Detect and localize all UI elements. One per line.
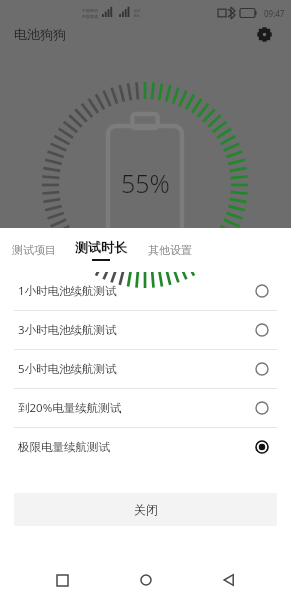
staticText: 601 — [134, 8, 141, 13]
staticText: 极限电量续航测试 — [18, 440, 110, 454]
button[interactable]: Recents — [40, 560, 84, 600]
button[interactable]: 到20%电量续航测试 — [0, 389, 291, 427]
staticText: 中国联通 — [82, 14, 98, 19]
button[interactable]: Back — [207, 560, 251, 600]
staticText: 09:47 — [264, 8, 285, 19]
staticText: 5小时电池续航测试 — [18, 361, 117, 377]
staticText: 关闭 — [134, 502, 158, 517]
staticText: 3小时电池续航测试 — [18, 322, 117, 338]
button[interactable]: 3小时电池续航测试 — [0, 311, 291, 349]
staticText: 测试项目 — [12, 243, 56, 257]
staticText: 到20%电量续航测试 — [18, 400, 122, 416]
staticText: 测试时长 — [75, 239, 127, 255]
staticText: B/s — [134, 13, 141, 18]
button[interactable]: 测试时长 — [75, 228, 127, 272]
button[interactable]: 测试项目 — [12, 228, 56, 272]
button[interactable]: 5小时电池续航测试 — [0, 350, 291, 388]
staticText: 55% — [121, 166, 170, 200]
button[interactable]: Home — [124, 560, 168, 600]
button[interactable]: 其他设置 — [148, 228, 192, 272]
staticText: 1小时电池续航测试 — [18, 283, 117, 299]
button[interactable]: 极限电量续航测试 — [0, 428, 291, 466]
button[interactable]: 关闭 — [14, 493, 277, 526]
staticText: 电池狗狗 — [14, 26, 66, 42]
button[interactable]: Settings — [251, 26, 277, 42]
staticText: 其他设置 — [148, 243, 192, 257]
button[interactable]: 1小时电池续航测试 — [0, 272, 291, 310]
staticText: 中国移动 — [82, 8, 98, 13]
